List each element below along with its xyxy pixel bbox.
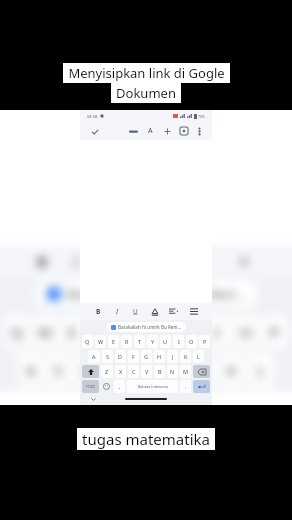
button[interactable]: F xyxy=(128,350,139,363)
button[interactable]: K xyxy=(180,350,191,363)
button[interactable]: J xyxy=(167,350,178,363)
staticText: J xyxy=(172,353,174,360)
button[interactable]: P xyxy=(199,335,210,348)
staticText: U xyxy=(133,307,138,316)
button[interactable]: U xyxy=(160,335,171,348)
button[interactable]: Undo xyxy=(127,125,139,137)
button[interactable]: Bahasa Indonesia xyxy=(127,380,178,393)
staticText: R xyxy=(125,338,129,345)
button[interactable]: U xyxy=(130,306,141,317)
staticText: B xyxy=(37,251,47,271)
button[interactable]: Q xyxy=(82,335,93,348)
staticText: L xyxy=(257,360,265,380)
staticText: M xyxy=(183,368,188,375)
staticText: U xyxy=(163,338,168,345)
staticText: Q xyxy=(85,338,90,345)
staticText: L xyxy=(197,353,200,360)
button[interactable]: A xyxy=(88,350,100,363)
staticText: O xyxy=(189,338,194,345)
staticText: Z xyxy=(105,368,109,375)
button[interactable]: List xyxy=(188,306,199,317)
staticText: J xyxy=(201,360,206,380)
staticText: G xyxy=(140,360,151,380)
button[interactable]: Enter xyxy=(193,380,210,393)
button[interactable]: Hide keyboard xyxy=(90,396,96,402)
staticText: 70% xyxy=(198,114,205,119)
button[interactable]: , xyxy=(114,380,125,393)
staticText: 08.58 xyxy=(87,114,98,119)
staticText: K xyxy=(184,353,188,360)
staticText: A xyxy=(92,353,96,360)
button[interactable]: X xyxy=(115,365,126,378)
staticText: F xyxy=(132,353,135,360)
button[interactable]: I xyxy=(112,306,123,317)
staticText: Menyisipkan link di Gogle xyxy=(68,64,225,82)
staticText: E xyxy=(68,322,77,342)
button[interactable]: V xyxy=(141,365,152,378)
button[interactable]: Emoji xyxy=(101,381,112,392)
button[interactable]: Backspace xyxy=(193,365,210,378)
button[interactable]: I xyxy=(173,335,184,348)
button[interactable]: M xyxy=(180,365,191,378)
staticText: R xyxy=(96,322,106,342)
staticText: E xyxy=(112,338,116,345)
staticText: Y xyxy=(155,322,164,342)
staticText: S xyxy=(54,360,63,380)
staticText: H xyxy=(157,353,162,360)
button[interactable]: N xyxy=(167,365,178,378)
staticText: , xyxy=(119,383,121,390)
button[interactable]: Text color xyxy=(149,306,160,317)
button[interactable]: B xyxy=(154,365,165,378)
staticText: S xyxy=(106,353,110,360)
button[interactable]: H xyxy=(154,350,165,363)
staticText: W xyxy=(98,338,104,345)
staticText: O xyxy=(240,322,252,342)
button[interactable]: Y xyxy=(147,335,158,348)
button[interactable]: Z xyxy=(101,365,113,378)
button[interactable]: Align xyxy=(167,305,180,318)
staticText: K xyxy=(227,360,237,380)
button[interactable]: R xyxy=(121,335,132,348)
button[interactable]: B xyxy=(93,306,104,317)
staticText: G xyxy=(144,353,149,360)
button[interactable]: D xyxy=(115,350,126,363)
staticText: . xyxy=(185,383,187,390)
button[interactable]: Insert xyxy=(161,125,173,137)
button[interactable]: Done xyxy=(88,125,101,138)
staticText: tugas matematika xyxy=(82,429,210,449)
staticText: I xyxy=(178,338,180,345)
button[interactable]: G xyxy=(141,350,152,363)
staticText: F xyxy=(112,360,120,380)
staticText: Barakallah fii umrik Bu Reni… xyxy=(67,285,246,303)
staticText: D xyxy=(118,353,123,360)
staticText: X xyxy=(119,368,123,375)
button[interactable]: E xyxy=(108,335,119,348)
button[interactable]: S xyxy=(102,350,113,363)
staticText: T xyxy=(126,322,135,342)
staticText: H xyxy=(168,360,180,380)
staticText: P xyxy=(203,338,207,345)
button[interactable]: . xyxy=(180,380,191,393)
button[interactable]: Barakallah fii umrik Bu Reni… xyxy=(107,322,186,332)
staticText: B xyxy=(96,307,101,316)
button[interactable]: C xyxy=(128,365,139,378)
staticText: D xyxy=(82,360,93,380)
staticText: U xyxy=(183,322,194,342)
button[interactable]: Shift xyxy=(82,365,99,378)
staticText: I xyxy=(116,307,119,316)
staticText: A xyxy=(148,126,153,136)
staticText: Dokumen xyxy=(116,84,176,102)
button[interactable]: T xyxy=(134,335,145,348)
staticText: Y xyxy=(151,338,155,345)
button[interactable]: L xyxy=(193,350,204,363)
staticText: Q xyxy=(11,322,23,342)
button[interactable]: More options xyxy=(194,126,204,136)
button[interactable]: Comment xyxy=(178,125,190,137)
button[interactable]: Symbols xyxy=(82,380,99,393)
staticText: T xyxy=(138,338,142,345)
staticText: I xyxy=(73,251,78,271)
button[interactable]: O xyxy=(186,335,197,348)
button[interactable]: W xyxy=(95,335,106,348)
button[interactable]: Format xyxy=(144,125,156,137)
staticText: V xyxy=(145,368,149,375)
